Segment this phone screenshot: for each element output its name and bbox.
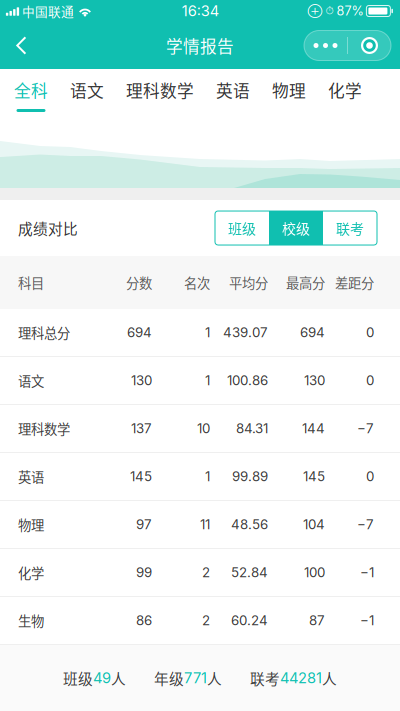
- staticText: 生物: [18, 611, 44, 630]
- staticText: 694: [300, 324, 325, 340]
- staticText: 物理: [18, 515, 44, 534]
- staticText: 理科数学: [126, 78, 194, 102]
- staticText: 48.56: [231, 516, 268, 532]
- staticText: 最高分: [286, 273, 325, 292]
- staticText: 1: [205, 324, 210, 340]
- staticText: 语文: [70, 78, 104, 102]
- staticText: 145: [303, 468, 325, 484]
- staticText: 145: [130, 468, 152, 484]
- staticText: ⊕: [307, 4, 322, 17]
- staticText: 0: [366, 372, 374, 388]
- staticText: 人: [207, 667, 222, 689]
- staticText: 平均分: [229, 273, 268, 292]
- staticText: 联考: [336, 218, 364, 238]
- staticText: 2: [202, 612, 210, 628]
- staticText: 87: [309, 612, 325, 628]
- staticText: 10: [197, 420, 210, 436]
- staticText: 物理: [272, 78, 306, 102]
- staticText: 2: [202, 564, 210, 580]
- button[interactable]: More options: [304, 30, 347, 60]
- staticText: 439.07: [223, 324, 268, 340]
- staticText: 49: [93, 669, 111, 687]
- staticText: 11: [200, 516, 210, 532]
- staticText: 年级: [154, 667, 184, 689]
- staticText: 0: [366, 468, 374, 484]
- staticText: 44281: [280, 669, 322, 687]
- staticText: 分数: [126, 273, 152, 292]
- staticText: 学情报告: [166, 33, 234, 57]
- staticText: 班级: [63, 667, 93, 689]
- staticText: 52.84: [231, 564, 268, 580]
- staticText: 名次: [184, 273, 210, 292]
- staticText: 99.89: [232, 468, 268, 484]
- staticText: 130: [304, 372, 325, 388]
- button[interactable]: 联考: [323, 211, 377, 245]
- button[interactable]: 物理: [261, 69, 317, 119]
- staticText: 60.24: [231, 612, 268, 628]
- staticText: 97: [136, 516, 152, 532]
- staticText: 成绩对比: [18, 217, 78, 239]
- staticText: 理科总分: [18, 323, 70, 342]
- staticText: 84.31: [236, 420, 268, 436]
- staticText: 校级: [282, 218, 310, 238]
- staticText: 全科: [14, 78, 48, 102]
- staticText: 99: [136, 564, 152, 580]
- button[interactable]: 班级: [215, 211, 269, 245]
- staticText: −1: [360, 612, 374, 628]
- staticText: 人: [322, 667, 337, 689]
- staticText: 1: [205, 468, 210, 484]
- staticText: 771: [184, 669, 207, 687]
- staticText: ⏱: [325, 6, 333, 16]
- staticText: 科目: [18, 273, 44, 292]
- button[interactable]: 理科数学: [115, 69, 205, 119]
- staticText: 137: [131, 420, 152, 436]
- staticText: −7: [357, 516, 374, 532]
- staticText: 0: [366, 324, 374, 340]
- staticText: 差距分: [335, 273, 374, 292]
- button[interactable]: 全科: [3, 69, 59, 119]
- button[interactable]: Back: [0, 22, 42, 69]
- staticText: 语文: [18, 371, 44, 390]
- staticText: 16:34: [182, 2, 219, 20]
- staticText: 100.86: [227, 372, 268, 388]
- button[interactable]: 英语: [205, 69, 261, 119]
- staticText: 86: [136, 612, 152, 628]
- staticText: −7: [357, 420, 374, 436]
- staticText: 87%: [336, 3, 363, 19]
- staticText: 英语: [18, 467, 44, 486]
- staticText: 中国联通: [22, 2, 74, 20]
- staticText: 班级: [228, 218, 256, 238]
- staticText: 100: [304, 564, 325, 580]
- staticText: 694: [127, 324, 152, 340]
- button[interactable]: 语文: [59, 69, 115, 119]
- staticText: 联考: [250, 667, 280, 689]
- staticText: 化学: [328, 78, 362, 102]
- staticText: 130: [131, 372, 152, 388]
- button[interactable]: 校级: [269, 211, 323, 245]
- staticText: 104: [303, 516, 325, 532]
- staticText: 144: [302, 420, 325, 436]
- staticText: 英语: [216, 78, 250, 102]
- staticText: 人: [111, 667, 126, 689]
- staticText: 化学: [18, 563, 44, 582]
- staticText: 理科数学: [18, 419, 70, 438]
- button[interactable]: Close mini program: [348, 30, 391, 60]
- button[interactable]: 化学: [317, 69, 373, 119]
- staticText: 1: [205, 372, 210, 388]
- staticText: −1: [360, 564, 374, 580]
